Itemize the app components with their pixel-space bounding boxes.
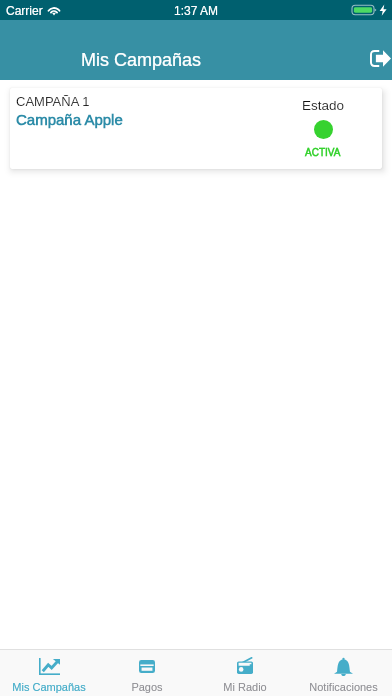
- button[interactable]: Mi Radio: [196, 650, 294, 696]
- staticText: CAMPAÑA 1: [16, 94, 90, 109]
- staticText: Mi Radio: [223, 681, 267, 693]
- button[interactable]: CAMPAÑA 1: [10, 88, 382, 169]
- button[interactable]: Mis Campañas: [0, 650, 98, 696]
- staticText: 1:37 AM: [174, 4, 219, 17]
- staticText: Mis Campañas: [12, 681, 86, 693]
- button[interactable]: Notificaciones: [294, 650, 392, 696]
- button[interactable]: Cerrar sesión: [358, 36, 392, 80]
- staticText: Notificaciones: [309, 681, 378, 693]
- staticText: ACTIVA: [305, 147, 341, 158]
- staticText: Pagos: [131, 681, 163, 693]
- staticText: Carrier: [6, 4, 43, 17]
- staticText: Mis Campañas: [81, 50, 202, 70]
- staticText: Estado: [302, 98, 345, 113]
- button[interactable]: Pagos: [98, 650, 196, 696]
- staticText: Campaña Apple: [16, 111, 123, 128]
